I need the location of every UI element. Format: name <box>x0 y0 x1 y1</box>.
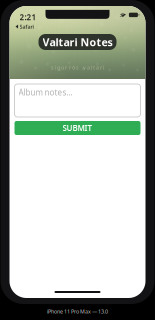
staticText: Valtari Notes <box>42 35 112 49</box>
button[interactable]: SUBMIT <box>14 121 140 135</box>
staticText: Safari <box>19 23 33 30</box>
staticText: SUBMIT <box>62 123 92 133</box>
staticText: iPhone 11 Pro Max — 13.0 <box>47 308 108 315</box>
staticText: 2:21 <box>19 12 36 22</box>
button[interactable]: Valtari Notes <box>38 34 116 50</box>
staticText: s i g u r r ó s v a l t a r i <box>51 64 104 71</box>
staticText: Album notes... <box>18 87 72 98</box>
